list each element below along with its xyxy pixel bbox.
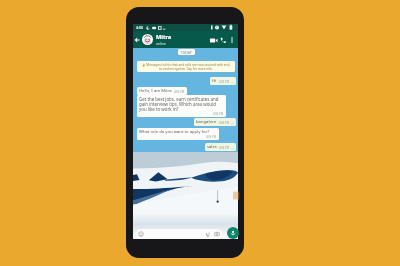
button[interactable]: Attach [136, 229, 222, 239]
button[interactable]: bangalore [194, 118, 236, 126]
staticText: 4:06 PM [219, 121, 230, 125]
staticText: TODAY [181, 50, 192, 54]
staticText: 4:06 PM [174, 90, 185, 94]
staticText: What role do you want to apply for? [139, 129, 209, 135]
staticText: online [156, 41, 166, 46]
button[interactable]: More options [228, 34, 235, 46]
button[interactable]: 🔒 Messages to this chat and calls are no… [137, 61, 235, 72]
staticText: Mitra [156, 33, 172, 41]
staticText: Get the best jobs, earn certificates and… [139, 96, 219, 112]
button[interactable]: What role do you want to apply for? [137, 128, 219, 140]
staticText: 4:06 PM [206, 135, 217, 139]
staticText: 4:06 PM [213, 112, 224, 116]
staticText: Hello, I am Mitra [139, 88, 172, 94]
button[interactable]: TODAY [178, 49, 195, 55]
staticText: 4:06 [136, 25, 144, 30]
staticText: 4:06 PM [219, 146, 230, 150]
button[interactable]: Attach [205, 231, 211, 237]
button[interactable]: Back [133, 34, 141, 46]
button[interactable]: Profile photo [142, 34, 153, 45]
button[interactable]: Video call [209, 34, 218, 46]
staticText: Hi [212, 78, 217, 84]
button[interactable]: Hello, I am Mitra [137, 87, 187, 95]
button[interactable]: Voice call [219, 34, 227, 46]
button[interactable]: Get the best jobs, earn certificates and… [137, 95, 226, 117]
button[interactable]: Record voice message [227, 227, 239, 239]
staticText: sales [207, 144, 217, 150]
button[interactable]: Hi [210, 77, 236, 85]
staticText: bangalore [196, 119, 217, 125]
button[interactable]: sales [205, 143, 236, 151]
staticText: 🔒 Messages to this chat and calls are no… [141, 63, 231, 71]
staticText: 4:06 PM [219, 80, 230, 84]
button[interactable]: Camera [214, 231, 220, 237]
